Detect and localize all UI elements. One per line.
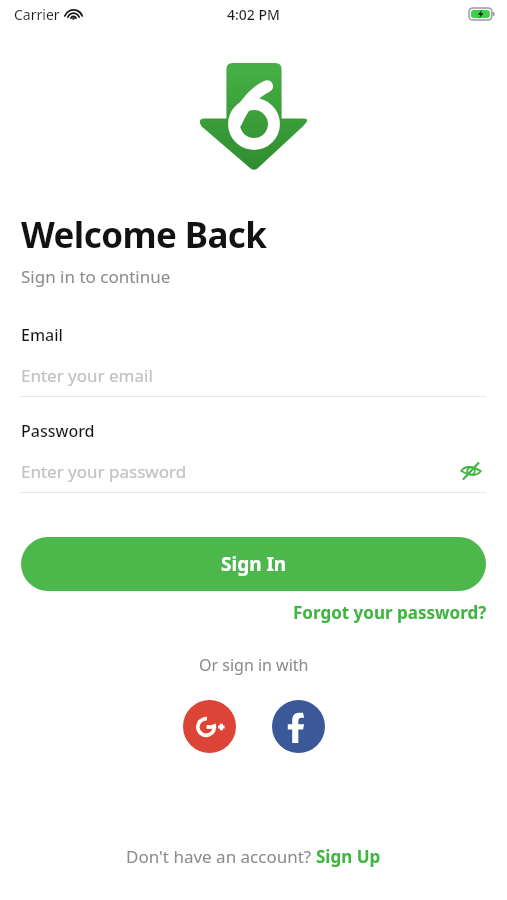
button[interactable]: Toggle password visibility	[456, 456, 486, 486]
staticText: Password	[21, 420, 95, 442]
button[interactable]: Don't have an account?	[126, 845, 381, 868]
staticText: Forgot your password?	[293, 601, 487, 624]
button[interactable]: Forgot your password?	[293, 601, 487, 624]
button[interactable]: Sign in with Google	[183, 700, 236, 753]
button[interactable]: Sign in with Facebook	[272, 700, 325, 753]
staticText: Sign in to continue	[21, 265, 171, 288]
staticText: Email	[21, 324, 63, 346]
button[interactable]: Sign In	[21, 537, 486, 591]
staticText: Or sign in with	[199, 654, 309, 676]
staticText: 4:02 PM	[227, 5, 280, 24]
staticText: Enter your email	[21, 364, 153, 387]
staticText: Don't have an account?	[126, 845, 316, 868]
staticText: Carrier	[14, 5, 60, 24]
staticText: Sign In	[221, 551, 287, 577]
staticText: Welcome Back	[21, 211, 267, 259]
staticText: Sign Up	[316, 845, 381, 868]
staticText: Enter your password	[21, 460, 187, 483]
